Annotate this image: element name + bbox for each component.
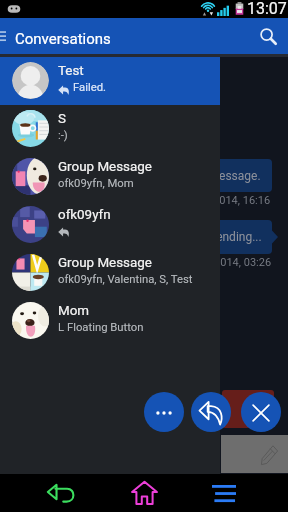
button[interactable]: Group Message: [0, 249, 220, 297]
staticText: ofk09yfn, Mom: [58, 177, 134, 190]
button[interactable]: Group Message: [0, 153, 220, 201]
staticText: Sending...: [209, 230, 262, 244]
staticText: L Floating Button: [58, 321, 144, 334]
staticText: Mom: [58, 303, 90, 319]
staticText: ofk09yfn, Valentina, S, Test: [58, 273, 193, 286]
button[interactable]: Home: [117, 474, 171, 512]
staticText: Group Message: [58, 159, 152, 175]
staticText: S: [58, 111, 66, 127]
button[interactable]: Open navigation drawer: [0, 18, 12, 54]
button[interactable]: Reply: [191, 392, 231, 432]
staticText: Group Message: [58, 255, 152, 271]
staticText: 1, 2014, 16:16: [202, 194, 271, 207]
staticText: Failed.: [73, 81, 107, 94]
staticText: 2, 2014, 03:26: [203, 256, 272, 269]
staticText: Conversations: [15, 30, 111, 48]
button[interactable]: Test: [0, 57, 220, 105]
button[interactable]: More options: [144, 392, 184, 432]
staticText: Fa: [242, 402, 255, 416]
staticText: :-): [58, 129, 68, 142]
button[interactable]: Recent apps: [197, 474, 251, 512]
other: Attach: [260, 445, 278, 465]
button[interactable]: Search: [248, 18, 288, 54]
button[interactable]: Mom: [0, 297, 220, 345]
button[interactable]: ofk09yfn: [0, 201, 220, 249]
staticText: a message.: [199, 169, 261, 183]
button[interactable]: Fa: [222, 390, 274, 428]
staticText: ofk09yfn: [58, 207, 111, 223]
button[interactable]: Back: [34, 474, 88, 512]
button[interactable]: Close: [241, 392, 281, 432]
button[interactable]: S: [0, 105, 220, 153]
staticText: Test: [58, 63, 84, 79]
staticText: 13:07: [247, 0, 287, 17]
